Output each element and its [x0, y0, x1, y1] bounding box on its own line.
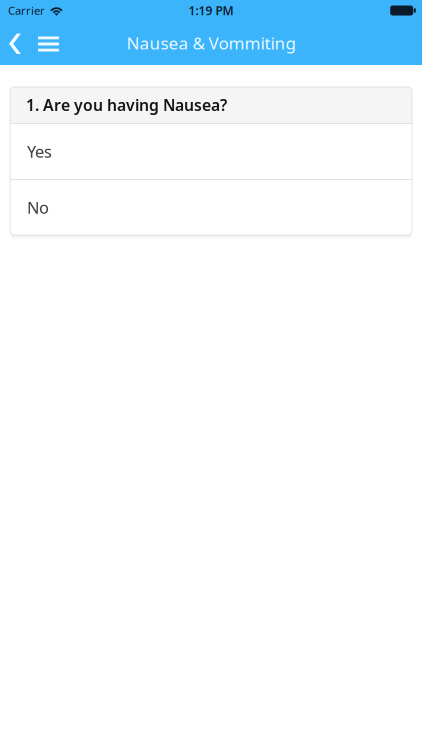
button[interactable]: No [10, 180, 412, 235]
staticText: No [27, 196, 49, 219]
staticText: Yes [27, 140, 52, 163]
staticText: Nausea & Vommiting [126, 31, 295, 55]
button[interactable]: Menu [27, 21, 67, 65]
button[interactable]: Yes [10, 124, 412, 179]
staticText: Carrier [8, 3, 45, 18]
staticText: 1:19 PM [188, 2, 233, 19]
staticText: 1. Are you having Nausea? [26, 94, 227, 116]
button[interactable]: Back [0, 21, 27, 65]
